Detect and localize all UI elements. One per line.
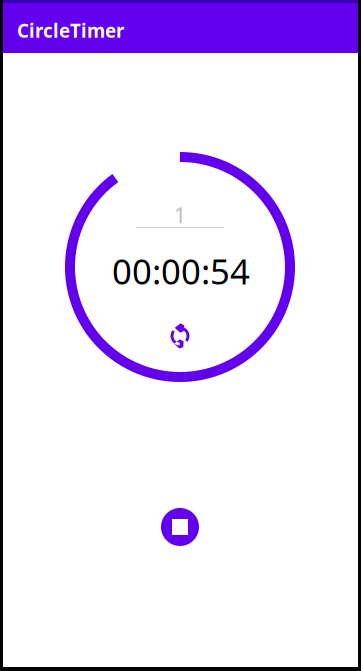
staticText: CircleTimer — [17, 18, 124, 43]
staticText: 1 — [174, 201, 186, 229]
staticText: 00:00:54 — [112, 248, 250, 294]
button[interactable]: Stop — [161, 508, 199, 546]
